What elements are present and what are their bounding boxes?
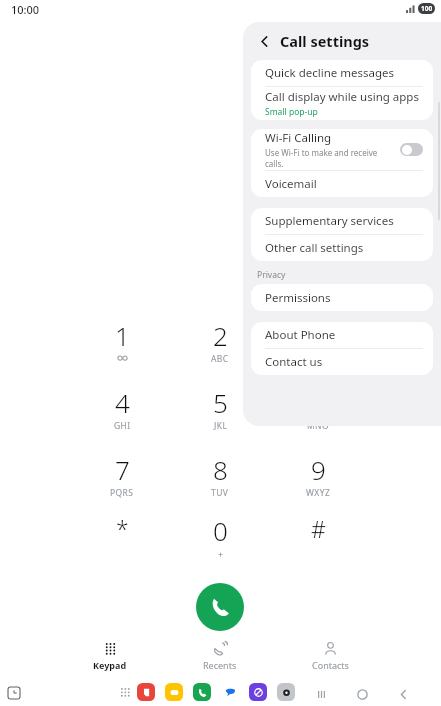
staticText: * — [116, 513, 129, 544]
staticText: Call display while using apps — [265, 89, 419, 105]
staticText: Privacy — [257, 269, 286, 281]
button[interactable]: About Phone — [251, 322, 433, 348]
staticText: Voicemail — [265, 176, 317, 192]
button[interactable]: 0 — [176, 513, 264, 569]
button[interactable]: App 2 — [193, 683, 211, 701]
button[interactable]: Keypad — [62, 641, 158, 675]
staticText: 4 — [115, 385, 130, 420]
button[interactable]: Home — [351, 683, 373, 705]
button[interactable]: Back — [392, 683, 414, 705]
staticText: TUV — [211, 487, 229, 499]
button[interactable]: 5 — [176, 385, 264, 441]
button[interactable]: 1 — [78, 318, 166, 374]
button[interactable]: Contact us — [251, 349, 433, 375]
button[interactable]: 9 — [274, 452, 362, 508]
button[interactable]: App 0 — [137, 683, 155, 701]
staticText: PQRS — [110, 487, 134, 499]
button[interactable]: 4 — [78, 385, 166, 441]
button[interactable]: 2 — [176, 318, 264, 374]
button[interactable]: App 4 — [249, 683, 267, 701]
staticText: Keypad — [93, 659, 127, 671]
staticText: 10:00 — [11, 2, 40, 17]
staticText: JKL — [214, 420, 228, 432]
staticText: Contact us — [265, 354, 323, 370]
staticText: WXYZ — [306, 487, 331, 499]
button[interactable]: * — [78, 513, 166, 569]
staticText: 0 — [213, 513, 228, 548]
button[interactable]: # — [274, 513, 362, 569]
button[interactable]: Recents — [310, 683, 332, 705]
staticText: Supplementary services — [265, 213, 394, 229]
button[interactable]: 3 — [274, 318, 362, 374]
staticText: ABC — [211, 353, 229, 365]
button[interactable]: 7 — [78, 452, 166, 508]
staticText: Recents — [203, 659, 237, 671]
button[interactable]: Wi-Fi Calling toggle — [400, 143, 423, 156]
staticText: 2 — [213, 318, 228, 353]
staticText: GHI — [114, 420, 131, 432]
staticText: + — [218, 548, 224, 560]
staticText: 8 — [213, 452, 228, 487]
staticText: DEF — [310, 353, 327, 365]
staticText: Contacts — [312, 659, 349, 671]
staticText: Call settings — [280, 31, 370, 51]
staticText: 100 — [421, 4, 433, 13]
staticText: MNO — [307, 420, 330, 432]
button[interactable]: Permissions — [251, 284, 433, 311]
button[interactable]: 6 — [274, 385, 362, 441]
staticText: # — [311, 513, 326, 544]
button[interactable]: Recents — [172, 641, 268, 675]
staticText: Small pop-up — [265, 106, 318, 118]
staticText: 9 — [311, 452, 326, 487]
staticText: Use Wi-Fi to make and receive calls. — [265, 147, 385, 169]
button[interactable]: Voicemail — [251, 171, 433, 197]
button[interactable]: Quick decline messages — [251, 60, 433, 86]
button[interactable]: Call display while using apps — [251, 87, 433, 120]
staticText: Other call settings — [265, 240, 364, 256]
staticText: About Phone — [265, 327, 336, 343]
button[interactable]: Supplementary services — [251, 208, 433, 234]
staticText: 1 — [115, 318, 130, 353]
button[interactable]: Wi-Fi Calling — [251, 129, 433, 170]
button[interactable]: App 5 — [277, 683, 295, 701]
staticText: Permissions — [265, 290, 331, 306]
button[interactable]: Contacts — [282, 641, 378, 675]
button[interactable]: 8 — [176, 452, 264, 508]
staticText: Quick decline messages — [265, 65, 395, 81]
staticText: Wi-Fi Calling — [265, 130, 332, 146]
button[interactable]: Call — [196, 583, 244, 631]
button[interactable]: App 1 — [165, 683, 183, 701]
button[interactable]: Back — [254, 31, 274, 51]
button[interactable]: All apps — [116, 683, 134, 701]
button[interactable]: App 3 — [221, 683, 239, 701]
button[interactable]: Recent apps — [3, 682, 25, 704]
staticText: 3 — [311, 318, 326, 353]
button[interactable]: Other call settings — [251, 235, 433, 261]
staticText: 7 — [115, 452, 130, 487]
staticText: 5 — [213, 385, 228, 420]
